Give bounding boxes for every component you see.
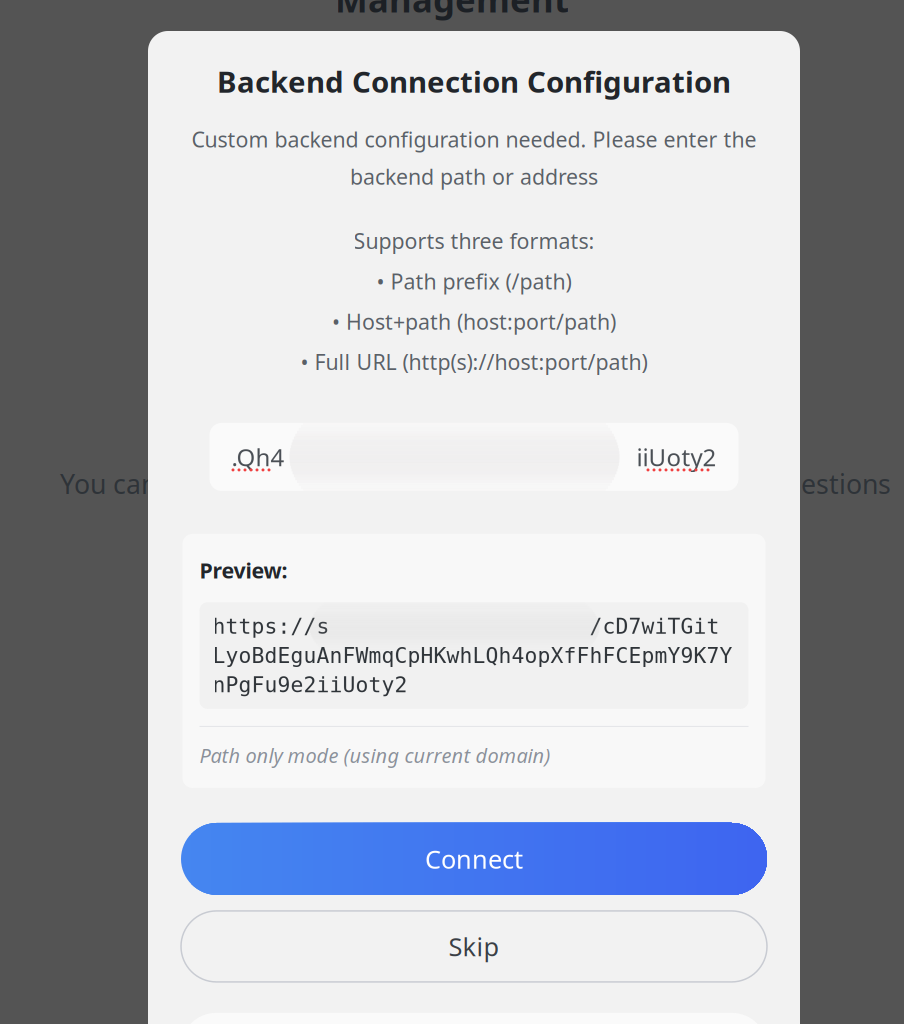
staticText: nPgFu9e2iiUoty2 <box>212 673 407 697</box>
staticText: Custom backend configuration needed. Ple… <box>191 125 756 153</box>
button[interactable]: Backend path or address <box>209 423 738 491</box>
staticText: You can <box>60 466 157 501</box>
staticText: • Path prefix (/path) <box>376 267 571 295</box>
staticText: LyoBdEguAnFWmqCpHKwhLQh4opXfFhFCEpmY9K7Y <box>212 643 732 668</box>
staticText: Preview: <box>199 556 287 584</box>
staticText: .Qh4 <box>231 441 284 473</box>
staticText: Supports three formats: <box>353 227 594 255</box>
staticText: Backend Connection Configuration <box>217 62 731 101</box>
staticText: Connect <box>425 842 523 876</box>
button[interactable]: Skip <box>181 911 767 982</box>
staticText: backend path or address <box>350 162 598 191</box>
button[interactable]: Connect <box>181 823 767 895</box>
staticText: Path only mode (using current domain) <box>199 742 550 768</box>
staticText: questions <box>769 466 891 501</box>
staticText: https://s /cD7wiTGit <box>212 614 719 638</box>
staticText: Management <box>335 0 569 22</box>
staticText: iiUoty2 <box>636 441 716 473</box>
staticText: • Full URL (http(s)://host:port/path) <box>300 348 647 376</box>
staticText: Skip <box>448 930 499 963</box>
staticText: • Host+path (host:port/path) <box>332 307 616 336</box>
